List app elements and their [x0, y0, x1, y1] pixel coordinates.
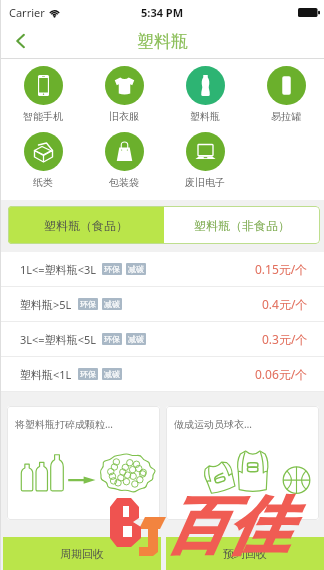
staticText: 智能手机 — [23, 110, 63, 123]
staticText: 环保 — [104, 264, 120, 274]
staticText: 做成运动员球衣… — [174, 417, 252, 431]
staticText: 塑料瓶>5L — [20, 297, 72, 312]
staticText: 百佳 — [165, 487, 289, 565]
button[interactable]: 纸类 — [6, 132, 80, 189]
staticText: 旧衣服 — [109, 110, 139, 123]
button[interactable]: 塑料瓶>5L — [0, 287, 324, 321]
staticText: 0.15元/个 — [255, 261, 308, 277]
button[interactable]: 智能手机 — [6, 66, 80, 123]
button[interactable]: 塑料瓶<1L — [0, 357, 324, 391]
button[interactable]: 塑料瓶（非食品） — [164, 206, 320, 244]
staticText: 1L<=塑料瓶<3L — [20, 262, 96, 277]
staticText: 周期回收 — [60, 547, 104, 561]
button[interactable]: 废旧电子 — [168, 132, 242, 189]
button[interactable]: 塑料瓶 — [168, 66, 242, 123]
staticText: 减碳 — [128, 264, 144, 274]
staticText: Carrier — [9, 5, 45, 20]
staticText: 减碳 — [104, 299, 120, 309]
button[interactable]: 做成运动员球衣… — [166, 406, 319, 520]
staticText: 环保 — [80, 299, 96, 309]
staticText: 易拉罐 — [271, 110, 301, 123]
button[interactable]: 易拉罐 — [249, 66, 323, 123]
button[interactable]: Back — [0, 24, 40, 58]
button[interactable]: 1L<=塑料瓶<3L — [0, 252, 324, 286]
staticText: 3L<=塑料瓶<5L — [20, 332, 96, 347]
button[interactable]: 包装袋 — [87, 132, 161, 189]
staticText: 0.3元/个 — [262, 331, 308, 347]
staticText: 塑料瓶<1L — [20, 367, 72, 382]
staticText: 塑料瓶（非食品） — [194, 218, 290, 233]
button[interactable]: 旧衣服 — [87, 66, 161, 123]
staticText: 塑料瓶（食品） — [44, 218, 128, 233]
staticText: 减碳 — [128, 334, 144, 344]
staticText: 5:34 PM — [141, 5, 184, 20]
staticText: 纸类 — [33, 176, 53, 189]
staticText: 环保 — [80, 369, 96, 379]
button[interactable]: 3L<=塑料瓶<5L — [0, 322, 324, 356]
button[interactable]: 塑料瓶（食品） — [8, 206, 164, 244]
staticText: 预约回收 — [223, 547, 267, 561]
staticText: 废旧电子 — [185, 176, 225, 189]
staticText: 0.4元/个 — [262, 296, 308, 312]
button[interactable]: 将塑料瓶打碎成颗粒… — [7, 406, 160, 520]
staticText: 0.06元/个 — [255, 366, 308, 382]
staticText: 将塑料瓶打碎成颗粒… — [15, 417, 113, 431]
staticText: 塑料瓶 — [137, 31, 188, 52]
staticText: 环保 — [104, 334, 120, 344]
button[interactable]: 周期回收 — [3, 537, 161, 570]
staticText: 塑料瓶 — [190, 110, 220, 123]
button[interactable]: 预约回收 — [166, 537, 324, 570]
staticText: 包装袋 — [109, 176, 139, 189]
staticText: 减碳 — [104, 369, 120, 379]
